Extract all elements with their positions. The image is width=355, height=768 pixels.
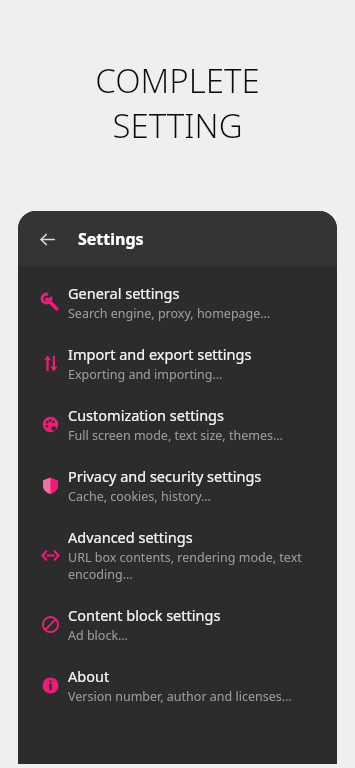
staticText: Import and export settings (68, 344, 252, 364)
button[interactable]: Import and export settings (18, 333, 337, 394)
staticText: Cache, cookies, history… (68, 488, 211, 505)
button[interactable]: Back (30, 222, 64, 256)
staticText: SETTING (112, 103, 243, 148)
staticText: About (68, 666, 110, 686)
button[interactable]: Privacy and security settings (18, 455, 337, 516)
button[interactable]: Advanced settings (18, 516, 337, 594)
staticText: Customization settings (68, 405, 224, 425)
staticText: Advanced settings (68, 527, 193, 547)
button[interactable]: Customization settings (18, 394, 337, 455)
button[interactable]: General settings (18, 272, 337, 333)
staticText: COMPLETE (95, 58, 260, 103)
staticText: Full screen mode, text size, themes… (68, 427, 283, 444)
staticText: Exporting and importing… (68, 366, 223, 383)
staticText: Ad block… (68, 627, 128, 644)
staticText: Content block settings (68, 605, 221, 625)
staticText: Privacy and security settings (68, 466, 262, 486)
staticText: Settings (78, 228, 144, 250)
button[interactable]: About (18, 655, 337, 716)
staticText: Version number, author and licenses… (68, 688, 292, 705)
staticText: General settings (68, 283, 180, 303)
staticText: URL box contents, rendering mode, text e… (68, 549, 321, 583)
button[interactable]: Content block settings (18, 594, 337, 655)
staticText: Search engine, proxy, homepage… (68, 305, 271, 322)
